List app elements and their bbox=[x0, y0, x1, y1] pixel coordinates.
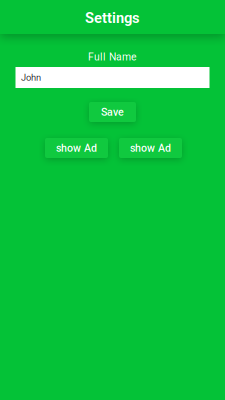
staticText: show Ad bbox=[130, 142, 171, 154]
staticText: Full Name bbox=[88, 51, 137, 63]
button[interactable]: Settings bbox=[0, 0, 225, 34]
staticText: John bbox=[21, 72, 41, 83]
button[interactable]: show Ad bbox=[45, 138, 108, 158]
staticText: show Ad bbox=[56, 142, 97, 154]
button[interactable]: Save bbox=[89, 102, 136, 122]
staticText: Save bbox=[101, 106, 124, 118]
button[interactable]: show Ad bbox=[119, 138, 182, 158]
staticText: Settings bbox=[85, 9, 140, 27]
button[interactable]: John bbox=[15, 67, 209, 88]
